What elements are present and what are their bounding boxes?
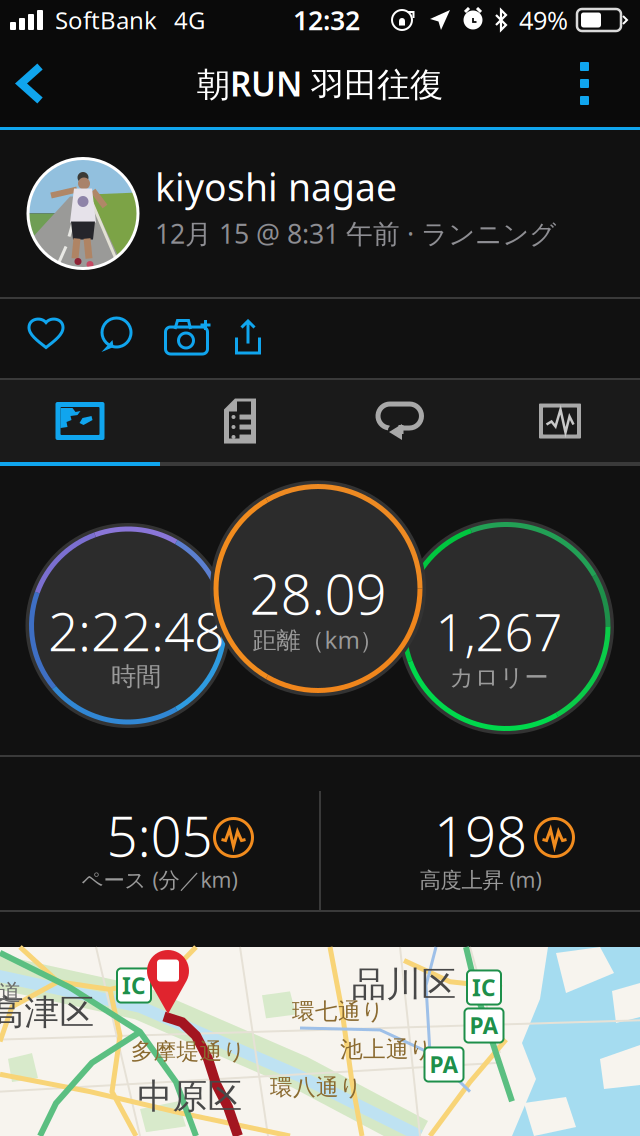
staticText: 12月 15 @ 8:31 午前 · ランニング <box>155 216 556 251</box>
staticText: 品川区 <box>351 963 456 1006</box>
staticText: 12:32 <box>293 2 360 38</box>
staticText: 高度上昇 (m) <box>419 865 541 894</box>
staticText: 環七通り <box>292 998 384 1025</box>
staticText: 多摩堤通り <box>130 1038 245 1065</box>
button[interactable]: Add photo <box>0 299 236 378</box>
button[interactable]: Splits <box>160 380 320 462</box>
button[interactable]: Map <box>0 380 160 462</box>
staticText: 高津区 <box>0 991 94 1034</box>
button[interactable]: 198 <box>321 791 640 910</box>
staticText: 198 <box>434 799 527 872</box>
button[interactable]: Give kudos <box>0 299 96 377</box>
button[interactable]: Back <box>0 40 60 126</box>
staticText: 道 <box>0 979 21 1006</box>
button[interactable]: Analysis <box>480 380 640 462</box>
staticText: 28.09 <box>249 557 386 630</box>
staticText: 49% <box>519 3 568 37</box>
button[interactable]: 5:05 <box>0 791 319 910</box>
button[interactable]: Laps <box>320 380 480 462</box>
staticText: PA <box>429 1049 458 1079</box>
staticText: PA <box>469 1010 498 1040</box>
button[interactable]: kiyoshi nagae <box>0 130 640 297</box>
staticText: 中原区 <box>137 1075 242 1118</box>
staticText: 距離（km） <box>252 624 383 655</box>
staticText: ペース (分／km) <box>81 865 237 894</box>
staticText: kiyoshi nagae <box>155 162 397 212</box>
button[interactable]: Comment <box>0 299 162 378</box>
staticText: 時間 <box>111 661 161 692</box>
button[interactable]: More options <box>544 40 640 127</box>
staticText: 1,267 <box>435 598 562 665</box>
staticText: SoftBank <box>55 4 157 36</box>
staticText: 環八通り <box>270 1074 362 1101</box>
staticText: 4G <box>174 4 205 36</box>
staticText: IC <box>472 972 496 1002</box>
staticText: カロリー <box>449 663 548 692</box>
staticText: IC <box>122 970 146 1000</box>
staticText: 池上通り <box>340 1036 432 1063</box>
button[interactable]: Share <box>0 299 301 378</box>
staticText: 朝RUN 羽田往復 <box>197 61 443 106</box>
staticText: 2:22:48 <box>48 595 224 666</box>
staticText: 5:05 <box>106 799 212 872</box>
